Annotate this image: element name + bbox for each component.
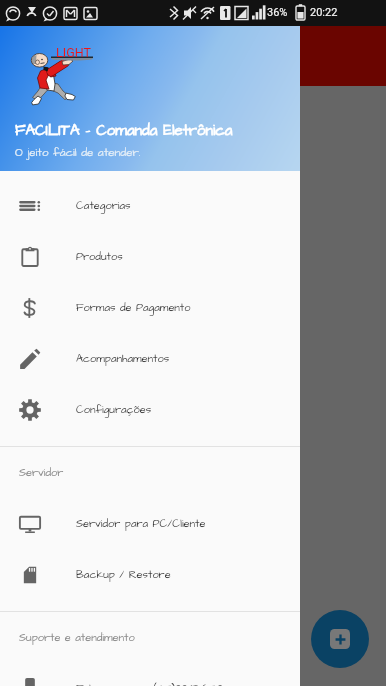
staticText: Servidor para PC/Cliente [76,516,206,531]
button[interactable]: Categorias [0,180,300,231]
staticText: O jeito fácil de atender. [15,145,141,161]
button[interactable]: Adicionar [311,610,369,668]
staticText: FACILITA – Comanda Eletrônica [15,120,233,141]
button[interactable]: Backup / Restore [0,549,300,600]
button[interactable]: Servidor para PC/Cliente [0,498,300,549]
staticText: Acompanhamentos [76,351,170,366]
staticText: Fale conosco (47)99115-6719 [76,681,223,686]
staticText: LIGHT [56,45,91,60]
staticText: Servidor [19,465,64,480]
staticText: Produtos [76,249,123,264]
staticText: Formas de Pagamento [76,300,191,315]
button[interactable]: Formas de Pagamento [0,282,300,333]
button[interactable]: Acompanhamentos [0,333,300,384]
staticText: Categorias [76,198,131,213]
button[interactable]: Fale conosco (47)99115-6719 [0,664,300,686]
button[interactable]: Produtos [0,231,300,282]
staticText: Backup / Restore [76,567,171,582]
button[interactable]: Configurações [0,384,300,435]
staticText: Suporte e atendimento [19,630,135,645]
staticText: Configurações [76,402,152,417]
staticText: 36% [267,6,288,19]
staticText: 20:22 [310,6,338,19]
